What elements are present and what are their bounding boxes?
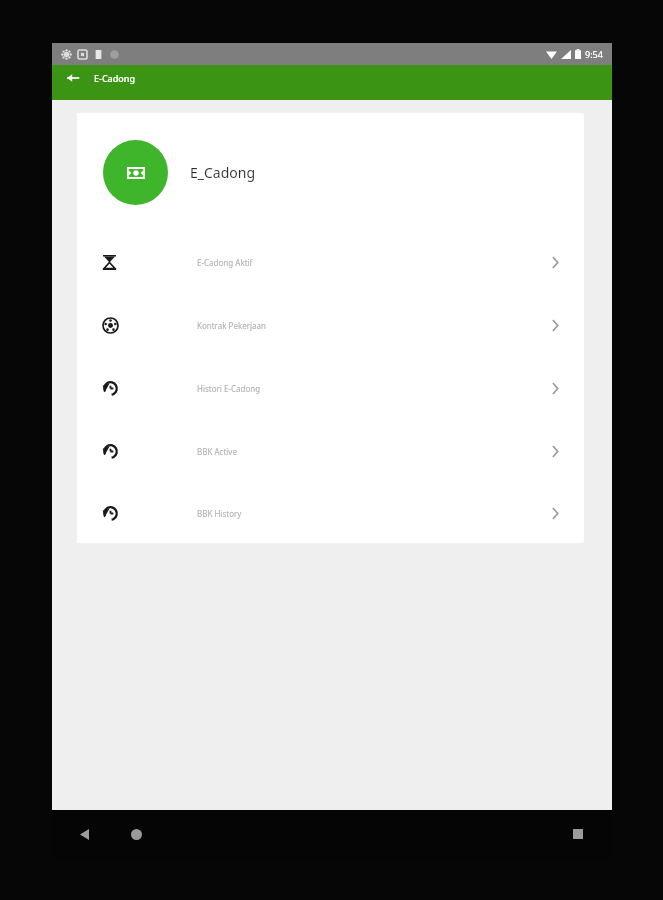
staticText: E-Cadong: [94, 72, 136, 84]
button[interactable]: Recent apps: [564, 820, 592, 848]
button[interactable]: Histori E-Cadong: [77, 357, 584, 420]
staticText: Kontrak Pekerjaan: [197, 320, 267, 331]
button[interactable]: E-Cadong Aktif: [77, 231, 584, 294]
staticText: BBK History: [197, 508, 242, 519]
button[interactable]: Kontrak Pekerjaan: [77, 294, 584, 357]
button[interactable]: BBK History: [77, 483, 584, 543]
button[interactable]: Home: [122, 820, 150, 848]
staticText: Histori E-Cadong: [197, 383, 261, 394]
button[interactable]: BBK Active: [77, 420, 584, 483]
button[interactable]: Back: [70, 820, 98, 848]
staticText: E-Cadong Aktif: [197, 257, 253, 268]
staticText: 9:54: [585, 48, 603, 60]
button[interactable]: Back: [60, 65, 86, 91]
staticText: E_Cadong: [190, 163, 256, 182]
staticText: BBK Active: [197, 446, 237, 457]
